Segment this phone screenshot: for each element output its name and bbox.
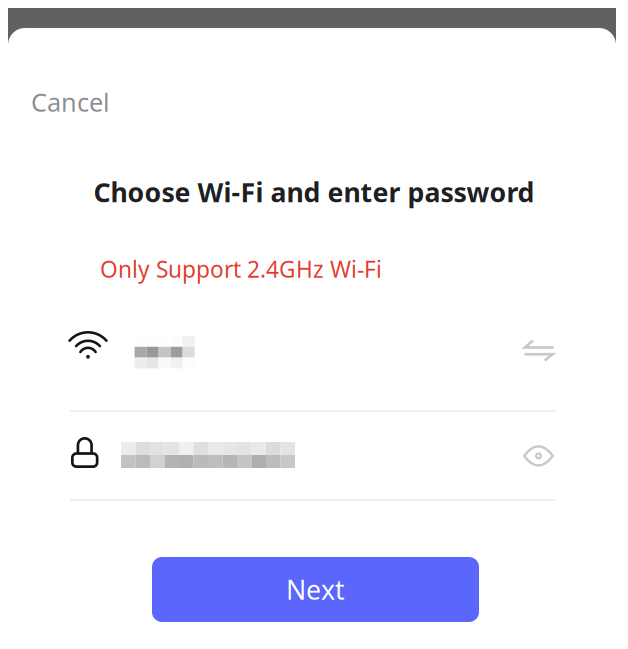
staticText: Only Support 2.4GHz Wi-Fi (100, 254, 382, 284)
button[interactable]: Wi-Fi network (70, 306, 512, 402)
staticText: Cancel (31, 85, 110, 119)
button[interactable]: Cancel (21, 80, 121, 124)
button[interactable]: Password (70, 416, 512, 502)
staticText: Next (286, 572, 345, 607)
button[interactable]: Switch network (517, 325, 561, 375)
staticText: Choose Wi-Fi and enter password (93, 174, 534, 210)
button[interactable]: Next (152, 557, 479, 622)
button[interactable]: Show password (516, 431, 560, 481)
